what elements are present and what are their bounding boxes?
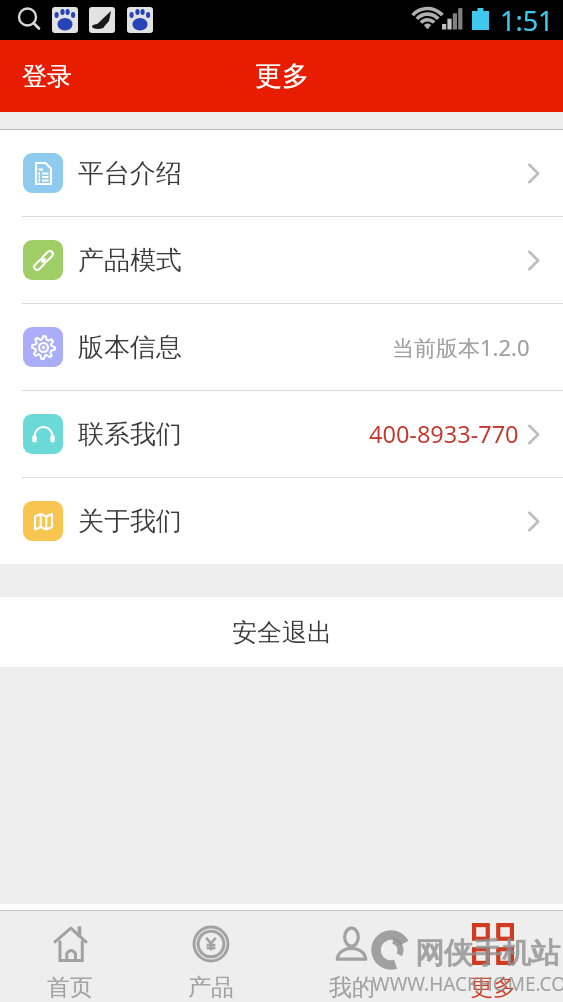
staticText: 400-8933-770	[369, 418, 519, 450]
staticText: 更多	[470, 973, 516, 1002]
button[interactable]: 关于我们	[0, 478, 563, 564]
staticText: 版本信息	[78, 331, 182, 364]
button[interactable]: 登录	[0, 51, 82, 102]
staticText: 我的	[329, 973, 375, 1002]
staticText: 关于我们	[78, 505, 182, 538]
staticText: 产品模式	[78, 244, 182, 277]
staticText: 安全退出	[232, 617, 332, 648]
staticText: 1:51	[500, 2, 554, 39]
staticText: 网侠手机站	[415, 935, 560, 972]
button[interactable]: 更多	[422, 911, 563, 1002]
button[interactable]: 产品模式	[0, 217, 563, 303]
button[interactable]: 我的	[281, 911, 422, 1002]
button[interactable]: 首页	[0, 911, 140, 1002]
button[interactable]: 版本信息	[0, 304, 563, 390]
staticText: 平台介绍	[78, 157, 182, 190]
staticText: 首页	[47, 973, 93, 1002]
button[interactable]: 联系我们	[0, 391, 563, 477]
button[interactable]: 产品	[140, 911, 281, 1002]
staticText: 产品	[188, 973, 234, 1002]
button[interactable]: 安全退出	[0, 597, 563, 667]
staticText: 联系我们	[78, 418, 182, 451]
button[interactable]: 平台介绍	[0, 130, 563, 216]
staticText: 当前版本1.2.0	[392, 332, 530, 362]
staticText: 更多	[255, 59, 309, 93]
staticText: WWW.HACKHOME.COM	[372, 971, 563, 997]
